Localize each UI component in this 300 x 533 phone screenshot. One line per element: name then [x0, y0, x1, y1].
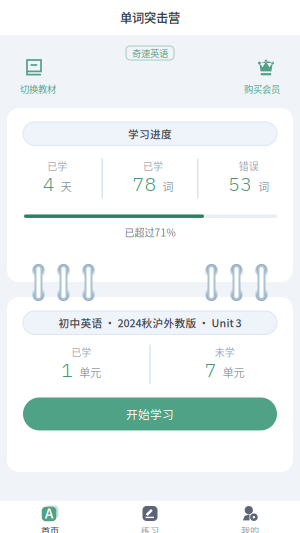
staticText: 学习进度 — [128, 126, 172, 141]
button[interactable]: 我的 — [200, 501, 300, 533]
staticText: 单元 — [79, 364, 101, 380]
staticText: 奇速英语 — [132, 46, 168, 60]
button[interactable]: 购买会员 — [224, 59, 300, 95]
staticText: 1 — [61, 357, 73, 382]
button[interactable]: A — [0, 501, 100, 533]
staticText: 天 — [61, 178, 72, 194]
staticText: 首页 — [41, 524, 59, 533]
staticText: 开始学习 — [126, 405, 174, 422]
staticText: 已超过71% — [124, 225, 175, 239]
staticText: 单词突击营 — [120, 9, 180, 26]
staticText: 已学 — [71, 345, 91, 359]
staticText: 未学 — [215, 345, 235, 359]
staticText: 已学 — [143, 159, 163, 173]
staticText: 78 — [132, 171, 156, 196]
staticText: 初中英语 · 2024秋沪外教版 · Unit 3 — [58, 315, 241, 330]
button[interactable]: 切换教材 — [0, 59, 76, 95]
staticText: 词 — [258, 178, 269, 194]
staticText: 错误 — [239, 159, 259, 173]
button[interactable]: 练习 — [100, 501, 200, 533]
staticText: 词 — [162, 178, 173, 194]
staticText: 单元 — [223, 364, 245, 380]
staticText: A — [44, 506, 53, 522]
staticText: 已学 — [47, 159, 67, 173]
staticText: 练习 — [141, 524, 159, 533]
staticText: 4 — [43, 171, 55, 196]
staticText: 53 — [228, 171, 252, 196]
staticText: 7 — [205, 357, 217, 382]
button[interactable]: 奇速英语 — [126, 46, 174, 60]
button[interactable]: 开始学习 — [23, 397, 277, 430]
staticText: 我的 — [241, 524, 259, 533]
staticText: 切换教材 — [20, 82, 56, 95]
staticText: 购买会员 — [244, 82, 280, 95]
